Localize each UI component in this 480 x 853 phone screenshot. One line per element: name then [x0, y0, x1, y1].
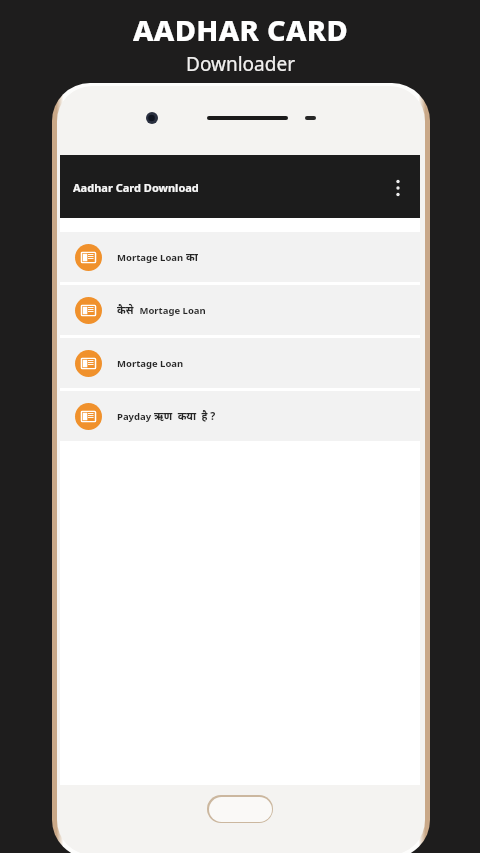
staticText: Downloader — [186, 51, 295, 77]
staticText: का — [186, 250, 198, 264]
button[interactable]: कैसे — [60, 285, 420, 335]
staticText: Mortage Loan — [137, 304, 206, 317]
staticText: ऋण कया है ? — [154, 409, 216, 423]
button[interactable]: Mortage Loan — [60, 338, 420, 388]
button[interactable]: Home — [207, 795, 273, 823]
staticText: Mortage Loan — [117, 251, 186, 264]
staticText: Mortage Loan — [117, 357, 184, 370]
button[interactable]: More options — [380, 170, 416, 206]
staticText: कैसे — [117, 303, 137, 317]
staticText: Payday — [117, 410, 154, 423]
button[interactable]: Payday — [60, 391, 420, 441]
staticText: AADHAR CARD — [133, 10, 348, 49]
staticText: Aadhar Card Download — [73, 180, 199, 195]
button[interactable]: Mortage Loan — [60, 232, 420, 282]
